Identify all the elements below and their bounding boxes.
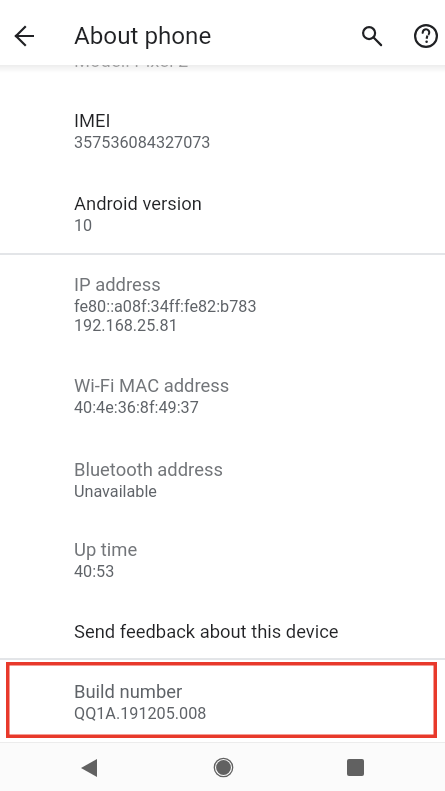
staticText: 40:4e:36:8f:49:37 bbox=[74, 398, 199, 417]
staticText: Model: Pixel 2 bbox=[74, 50, 189, 72]
button[interactable]: IMEI bbox=[0, 96, 445, 166]
button[interactable]: Send feedback about this device bbox=[0, 607, 445, 657]
button[interactable]: Home bbox=[199, 742, 247, 791]
staticText: Build number bbox=[74, 681, 183, 703]
staticText: IP address bbox=[74, 274, 161, 296]
button[interactable]: Bluetooth address bbox=[0, 445, 445, 515]
staticText: fe80::a08f:34ff:fe82:b783 bbox=[74, 297, 257, 316]
button[interactable]: Android version bbox=[0, 179, 445, 249]
button[interactable]: Back bbox=[2, 14, 46, 58]
button[interactable]: Up time bbox=[0, 525, 445, 595]
button[interactable]: Search bbox=[350, 14, 394, 58]
button[interactable]: Wi-Fi MAC address bbox=[0, 361, 445, 431]
staticText: Bluetooth address bbox=[74, 459, 223, 481]
staticText: Android version bbox=[74, 193, 202, 215]
staticText: Send feedback about this device bbox=[74, 621, 339, 643]
staticText: About phone bbox=[74, 22, 212, 50]
staticText: Up time bbox=[74, 539, 138, 561]
staticText: Unavailable bbox=[74, 482, 157, 501]
button[interactable]: IP address bbox=[0, 260, 445, 349]
button[interactable]: Build number bbox=[6, 662, 437, 738]
staticText: IMEI bbox=[74, 110, 111, 132]
staticText: 40:53 bbox=[74, 562, 115, 581]
button[interactable]: Recent apps bbox=[331, 742, 379, 791]
button[interactable]: Back bbox=[65, 742, 113, 791]
staticText: 357536084327073 bbox=[74, 133, 211, 152]
staticText: QQ1A.191205.008 bbox=[74, 704, 207, 723]
staticText: Wi-Fi MAC address bbox=[74, 375, 230, 397]
staticText: 10 bbox=[74, 216, 93, 235]
button[interactable]: Help bbox=[404, 14, 445, 58]
staticText: 192.168.25.81 bbox=[74, 316, 178, 335]
